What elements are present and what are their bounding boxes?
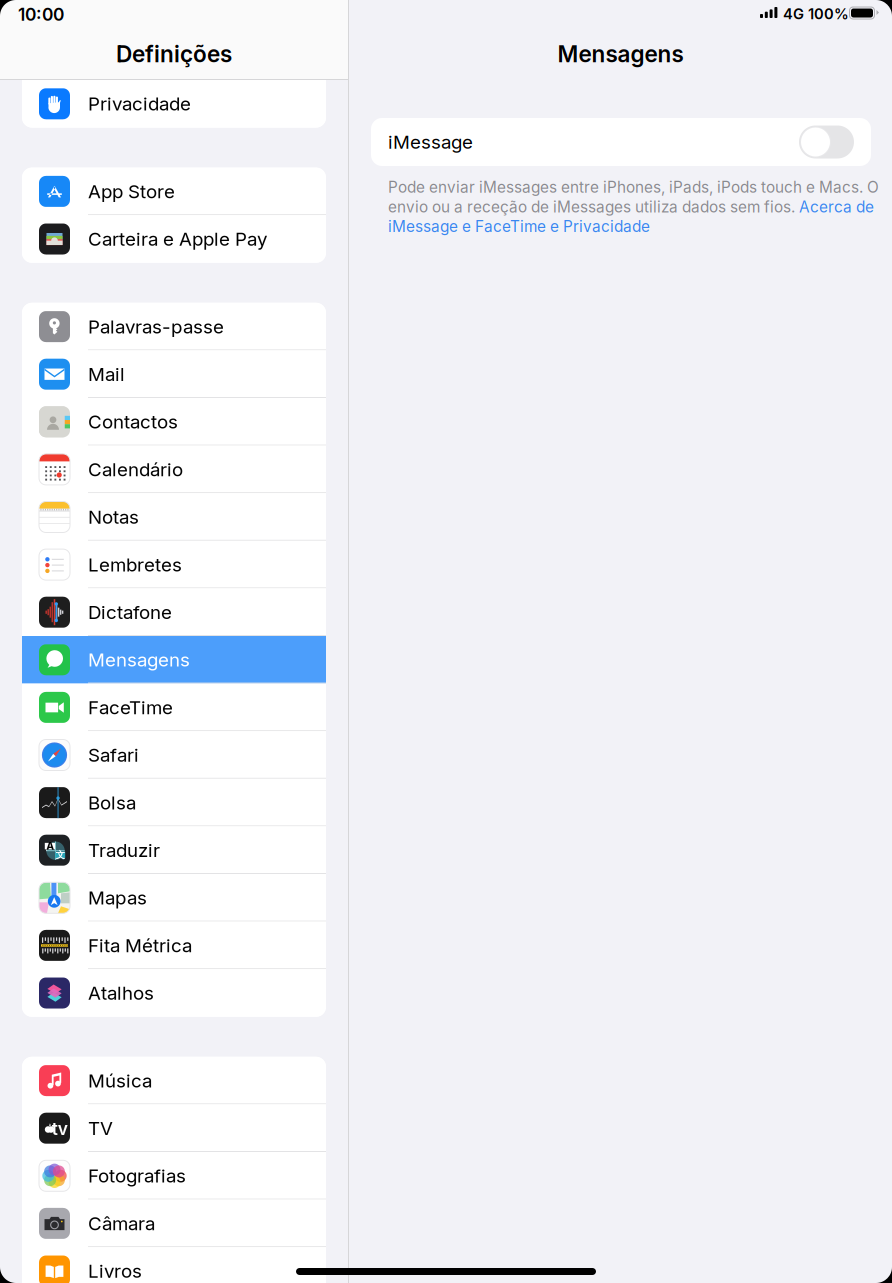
staticText: Mapas	[88, 886, 147, 909]
button[interactable]: iMessage e FaceTime e Privacidade	[388, 217, 650, 236]
staticText: Fita Métrica	[88, 934, 192, 957]
button[interactable]: Livros	[22, 1247, 326, 1283]
staticText: Mail	[88, 363, 125, 385]
staticText: Carteira e Apple Pay	[88, 228, 267, 250]
button[interactable]: FaceTime	[22, 684, 326, 731]
staticText: Palavras-passe	[88, 315, 224, 338]
staticText: Mensagens	[88, 648, 190, 671]
staticText: Privacidade	[88, 92, 191, 115]
button[interactable]: iMessage	[799, 125, 854, 158]
staticText: Música	[88, 1069, 152, 1092]
button[interactable]: Lembretes	[22, 541, 326, 588]
staticText: TV	[88, 1117, 113, 1139]
staticText: App Store	[88, 180, 175, 203]
staticText: Fotografias	[88, 1164, 186, 1187]
staticText: Acerca de	[799, 198, 874, 216]
staticText: Dictafone	[88, 601, 172, 623]
button[interactable]: Atalhos	[22, 969, 326, 1017]
staticText: Definições	[116, 40, 232, 68]
button[interactable]: Acerca de	[799, 198, 874, 216]
button[interactable]: Mensagens	[22, 636, 326, 684]
button[interactable]: Safari	[22, 731, 326, 779]
button[interactable]: Bolsa	[22, 779, 326, 826]
button[interactable]: Pesquisa	[22, 32, 326, 80]
staticText: 10:00	[18, 4, 64, 25]
staticText: Traduzir	[88, 839, 160, 861]
button[interactable]: Mail	[22, 350, 326, 398]
button[interactable]: Mapas	[22, 874, 326, 922]
staticText: Livros	[88, 1260, 142, 1282]
staticText: iMessage	[388, 131, 473, 153]
staticText: tv	[52, 1118, 68, 1139]
staticText: FaceTime	[88, 696, 173, 719]
staticText: Calendário	[88, 458, 183, 481]
button[interactable]: Carteira e Apple Pay	[22, 215, 326, 263]
staticText: Pesquisa	[88, 45, 168, 67]
button[interactable]: Palavras-passe	[22, 303, 326, 350]
button[interactable]: Privacidade	[22, 80, 326, 128]
staticText: 文	[56, 849, 65, 861]
button[interactable]: A	[22, 826, 326, 874]
staticText: 4G 100%	[783, 5, 849, 23]
button[interactable]: Calendário	[22, 446, 326, 493]
staticText: Câmara	[88, 1212, 155, 1235]
staticText: Pode enviar iMessages entre iPhones, iPa…	[388, 178, 879, 197]
button[interactable]: tv	[22, 1104, 326, 1152]
staticText: envio ou a receção de iMessages utiliza …	[388, 198, 799, 216]
staticText: Lembretes	[88, 553, 182, 576]
staticText: Contactos	[88, 410, 178, 433]
staticText: Safari	[88, 744, 139, 766]
staticText: A	[46, 839, 53, 853]
staticText: Mensagens	[557, 40, 683, 68]
button[interactable]: Notas	[22, 493, 326, 541]
button[interactable]: Contactos	[22, 398, 326, 446]
button[interactable]: App Store	[22, 168, 326, 215]
staticText: Atalhos	[88, 982, 154, 1004]
button[interactable]: Câmara	[22, 1200, 326, 1247]
staticText: Bolsa	[88, 791, 136, 814]
button[interactable]: Fotografias	[22, 1152, 326, 1200]
staticText: Notas	[88, 506, 139, 528]
button[interactable]: Fita Métrica	[22, 922, 326, 969]
button[interactable]: Música	[22, 1057, 326, 1104]
staticText: iMessage e FaceTime e Privacidade	[388, 217, 650, 236]
button[interactable]: Dictafone	[22, 588, 326, 636]
